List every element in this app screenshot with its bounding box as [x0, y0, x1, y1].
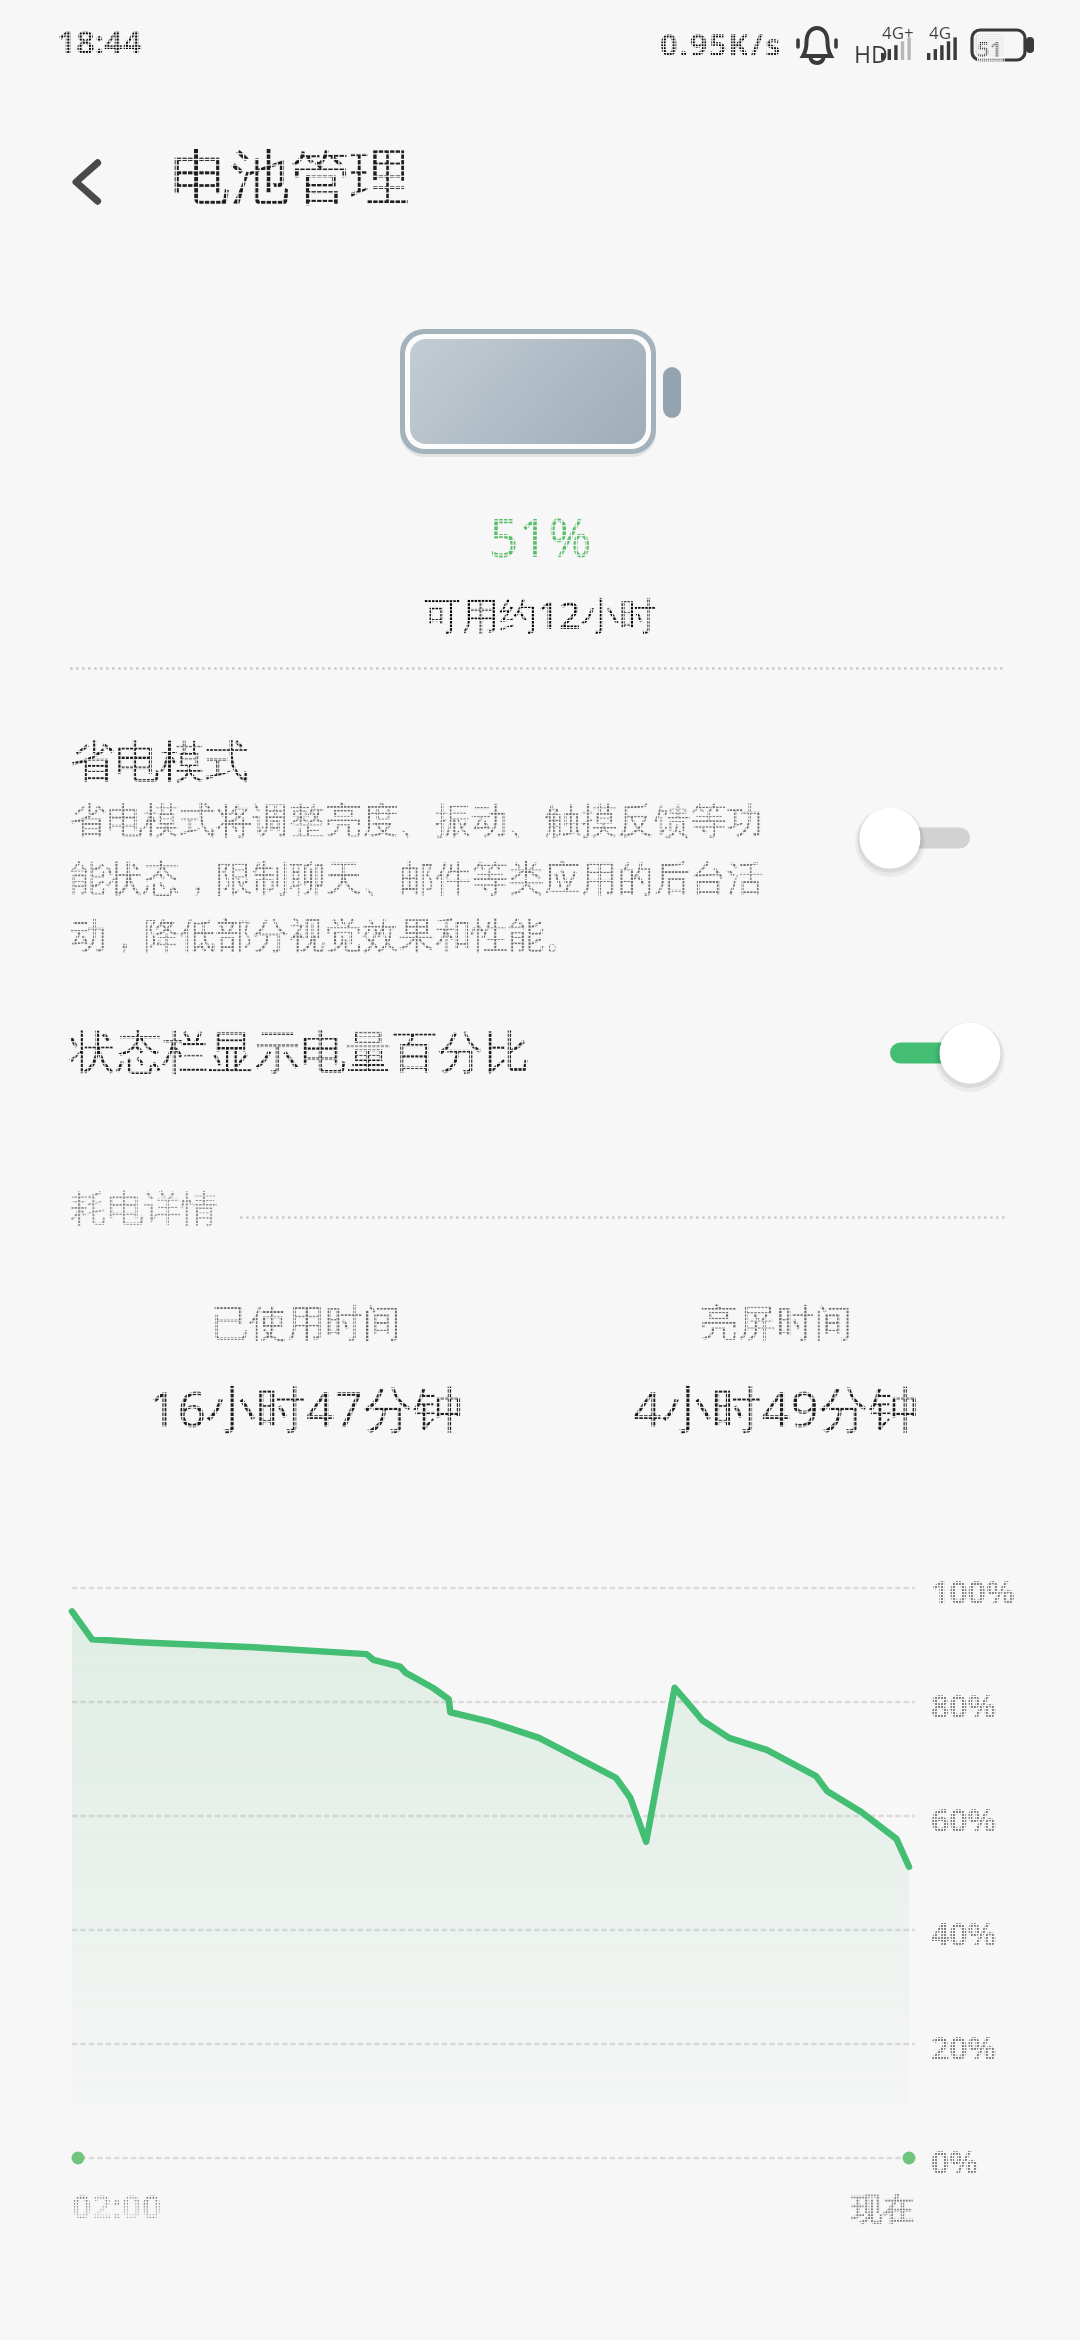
- staticText: 02:00: [72, 2183, 162, 2229]
- staticText: 40%: [931, 1912, 997, 1956]
- staticText: 0.95K/s: [660, 23, 783, 65]
- staticText: 省电模式将调整亮度、振动、触摸反馈等功能状态，限制聊天、邮件等类应用的后台活动，…: [70, 798, 770, 958]
- staticText: 100%: [931, 1570, 1015, 1614]
- staticText: 现在: [70, 2190, 913, 2229]
- staticText: 51: [977, 33, 1003, 63]
- staticText: HD: [854, 38, 888, 69]
- button[interactable]: 省电模式: [0, 712, 1080, 977]
- staticText: 0%: [931, 2140, 979, 2184]
- staticText: 4G: [929, 21, 952, 44]
- staticText: 60%: [931, 1798, 997, 1842]
- staticText: 80%: [931, 1684, 997, 1728]
- button[interactable]: 状态栏显示电量百分比: [0, 990, 1080, 1110]
- staticText: 4小时49分钟: [540, 1374, 1012, 1442]
- staticText: 电池管理: [170, 140, 410, 216]
- button[interactable]: Toggle power saving mode: [845, 793, 1005, 887]
- staticText: 耗电详情: [70, 1185, 218, 1232]
- button[interactable]: Back: [46, 140, 130, 224]
- staticText: 亮屏时间: [540, 1299, 1012, 1347]
- staticText: 20%: [931, 2026, 997, 2070]
- staticText: 16小时47分钟: [70, 1374, 542, 1442]
- staticText: 4G+: [882, 21, 914, 44]
- staticText: 51%: [0, 501, 1080, 572]
- button[interactable]: Toggle battery percentage in status bar: [885, 1006, 1045, 1100]
- staticText: 可用约12小时: [0, 588, 1080, 640]
- staticText: 状态栏显示电量百分比: [70, 1024, 530, 1082]
- staticText: 18:44: [57, 19, 142, 64]
- staticText: 已使用时间: [70, 1299, 542, 1347]
- staticText: 省电模式: [70, 734, 250, 791]
